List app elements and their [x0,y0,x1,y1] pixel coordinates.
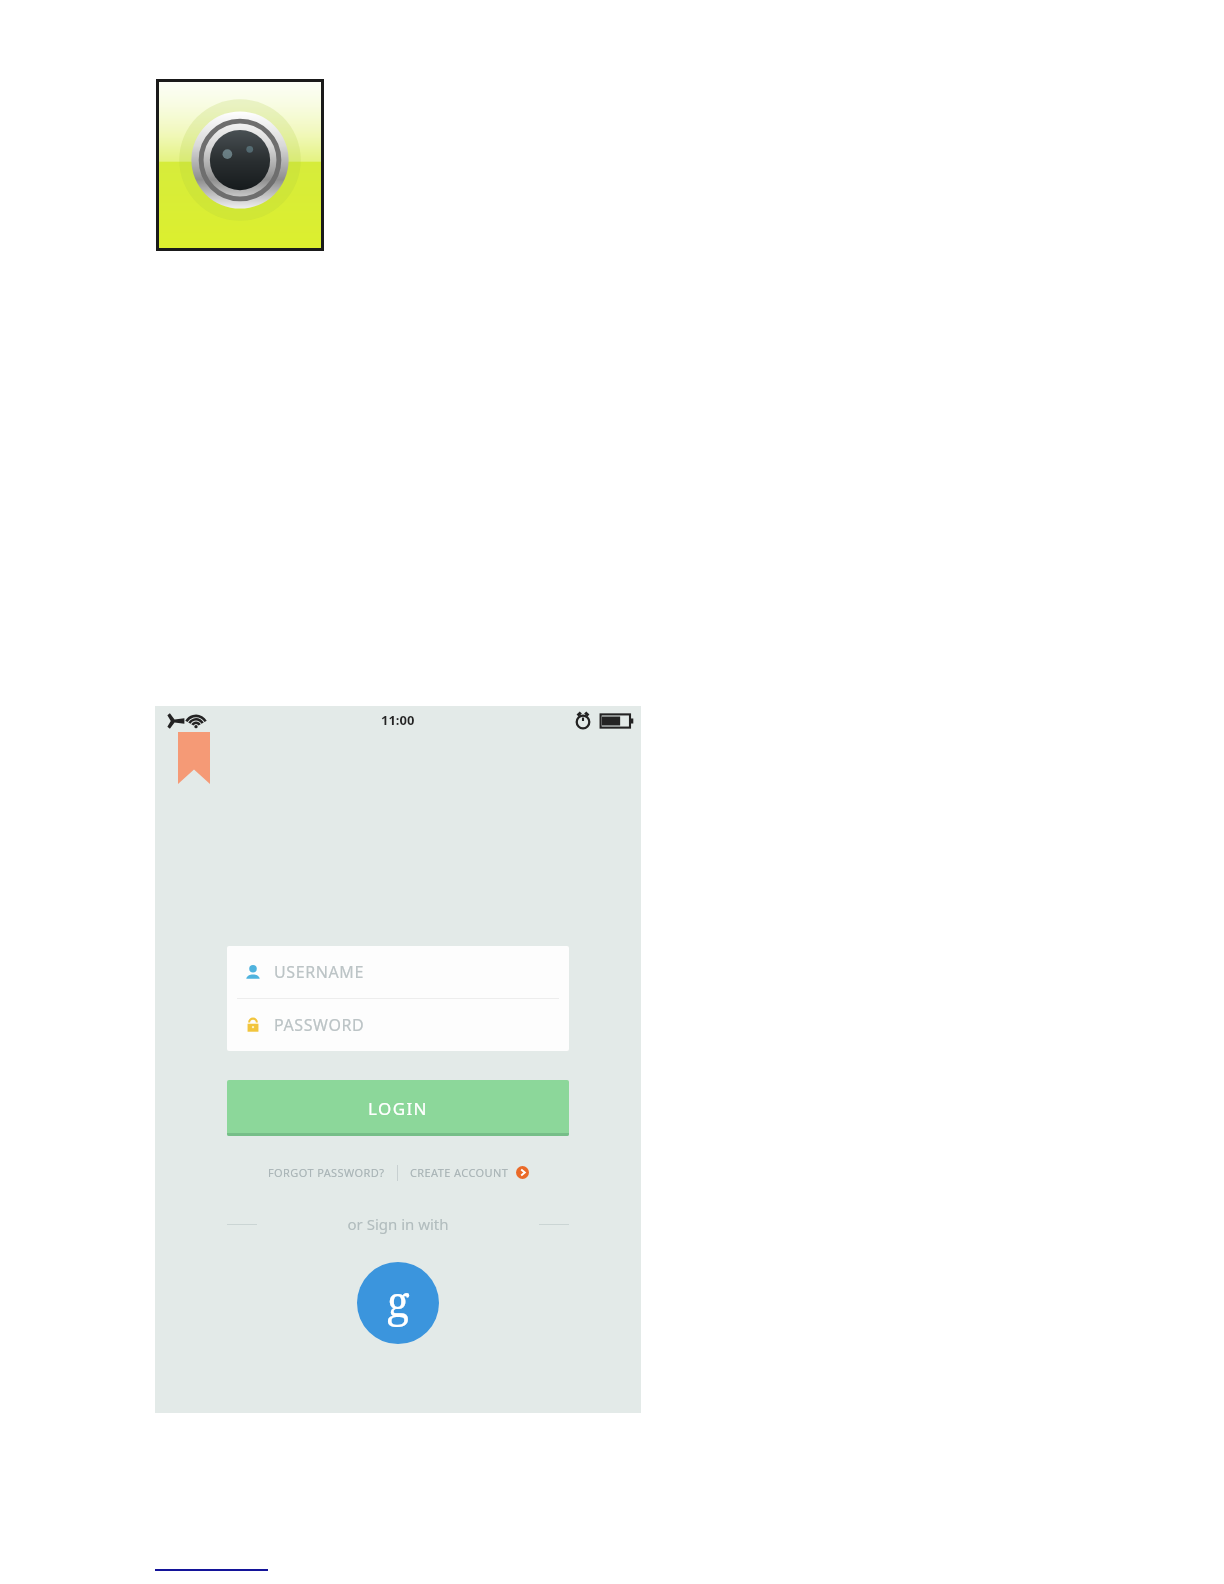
button[interactable]: Sign in with Google [357,1262,439,1344]
staticText: 11:00 [381,711,415,729]
staticText: or Sign in with [257,1214,539,1234]
button[interactable]: FORGOT PASSWORD? [266,1161,387,1184]
button[interactable]: PASSWORD [227,999,569,1051]
staticText: FORGOT PASSWORD? [268,1165,385,1180]
button[interactable]: Bookmark [178,732,210,784]
staticText: g [387,1272,410,1329]
staticText: USERNAME [274,961,364,983]
staticText: LOGIN [368,1097,428,1120]
staticText: CREATE ACCOUNT [410,1165,509,1180]
staticText: PASSWORD [274,1014,365,1036]
button[interactable]: LOGIN [227,1080,569,1136]
button[interactable]: USERNAME [227,946,569,998]
button[interactable]: CREATE ACCOUNT [408,1161,531,1184]
